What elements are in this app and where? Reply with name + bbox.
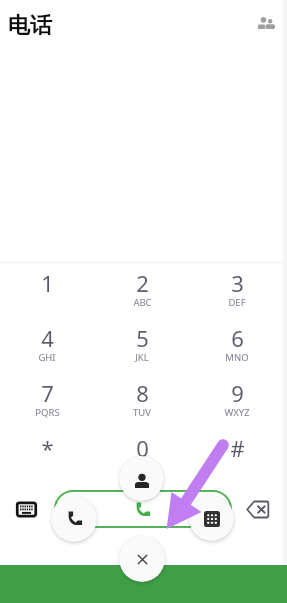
staticText: GHI (38, 351, 56, 364)
button[interactable]: # (197, 425, 277, 478)
button[interactable]: 1 (7, 260, 87, 313)
button[interactable]: 9 (197, 370, 277, 423)
button[interactable]: 5 (102, 315, 182, 368)
button[interactable]: Call (133, 501, 151, 519)
staticText: ABC (133, 296, 152, 309)
staticText: 1 (41, 268, 54, 298)
button[interactable]: 7 (7, 370, 87, 423)
staticText: JKL (135, 351, 149, 364)
button[interactable]: Keyboard (13, 496, 39, 522)
staticText: DEF (228, 296, 246, 309)
staticText: * (41, 433, 54, 463)
button[interactable]: Backspace (245, 496, 271, 522)
button[interactable]: Close (119, 536, 165, 582)
button[interactable]: 4 (7, 315, 87, 368)
staticText: 6 (231, 323, 244, 353)
button[interactable]: 0 (102, 425, 182, 478)
staticText: 0 (136, 433, 149, 463)
staticText: 3 (231, 268, 244, 298)
staticText: TUV (133, 406, 151, 419)
button[interactable]: Call (51, 496, 97, 542)
button[interactable]: * (7, 425, 87, 478)
staticText: 9 (231, 378, 244, 408)
staticText: # (230, 433, 245, 463)
staticText: 5 (136, 323, 149, 353)
button[interactable]: 8 (102, 370, 182, 423)
staticText: PQRS (35, 406, 60, 419)
button[interactable]: Dialpad (189, 496, 234, 541)
staticText: 7 (41, 378, 54, 408)
button[interactable]: Contacts (244, 1, 287, 45)
staticText: 8 (136, 378, 149, 408)
staticText: 2 (136, 268, 149, 298)
staticText: 电话 (8, 12, 52, 40)
staticText: WXYZ (224, 406, 250, 419)
button[interactable]: 6 (197, 315, 277, 368)
staticText: MNO (225, 351, 249, 364)
button[interactable]: 2 (102, 260, 182, 313)
button[interactable]: 3 (197, 260, 277, 313)
staticText: 4 (41, 323, 54, 353)
button[interactable]: Contact (119, 456, 164, 501)
